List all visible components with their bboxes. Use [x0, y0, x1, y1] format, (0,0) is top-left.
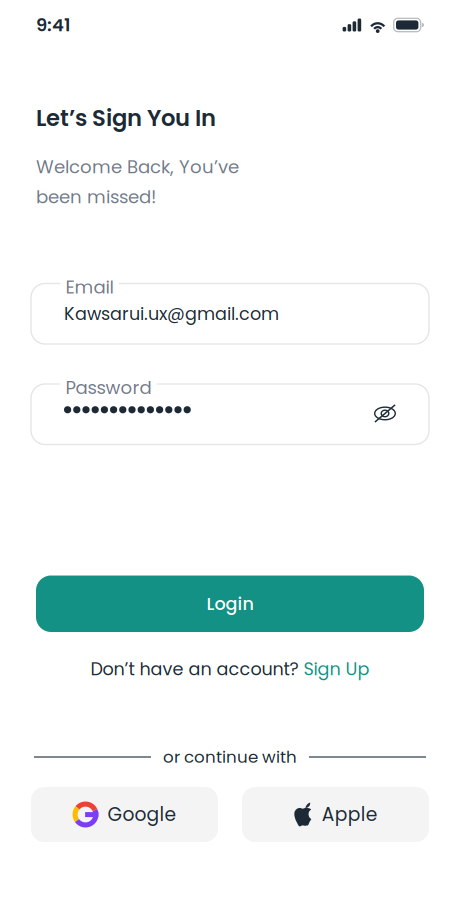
button[interactable]: Apple: [242, 787, 429, 842]
staticText: Google: [107, 801, 176, 827]
staticText: Password: [65, 375, 151, 400]
button[interactable]: Google: [31, 787, 218, 842]
staticText: Let’s Sign You In: [36, 102, 216, 134]
button[interactable]: Login: [36, 575, 424, 632]
staticText: 9:41: [36, 12, 71, 38]
button[interactable]: Show password: [374, 403, 396, 425]
staticText: been missed!: [36, 184, 156, 210]
staticText: Login: [206, 591, 253, 616]
staticText: Welcome Back, You’ve: [36, 154, 239, 180]
staticText: or continue with: [163, 745, 297, 769]
staticText: Don’t have an account?: [90, 657, 303, 681]
staticText: Email: [65, 274, 113, 300]
button[interactable]: Sign Up: [303, 657, 369, 681]
staticText: Kawsarui.ux@gmail.com: [64, 301, 279, 326]
staticText: Sign Up: [303, 657, 369, 681]
staticText: Apple: [322, 801, 378, 827]
